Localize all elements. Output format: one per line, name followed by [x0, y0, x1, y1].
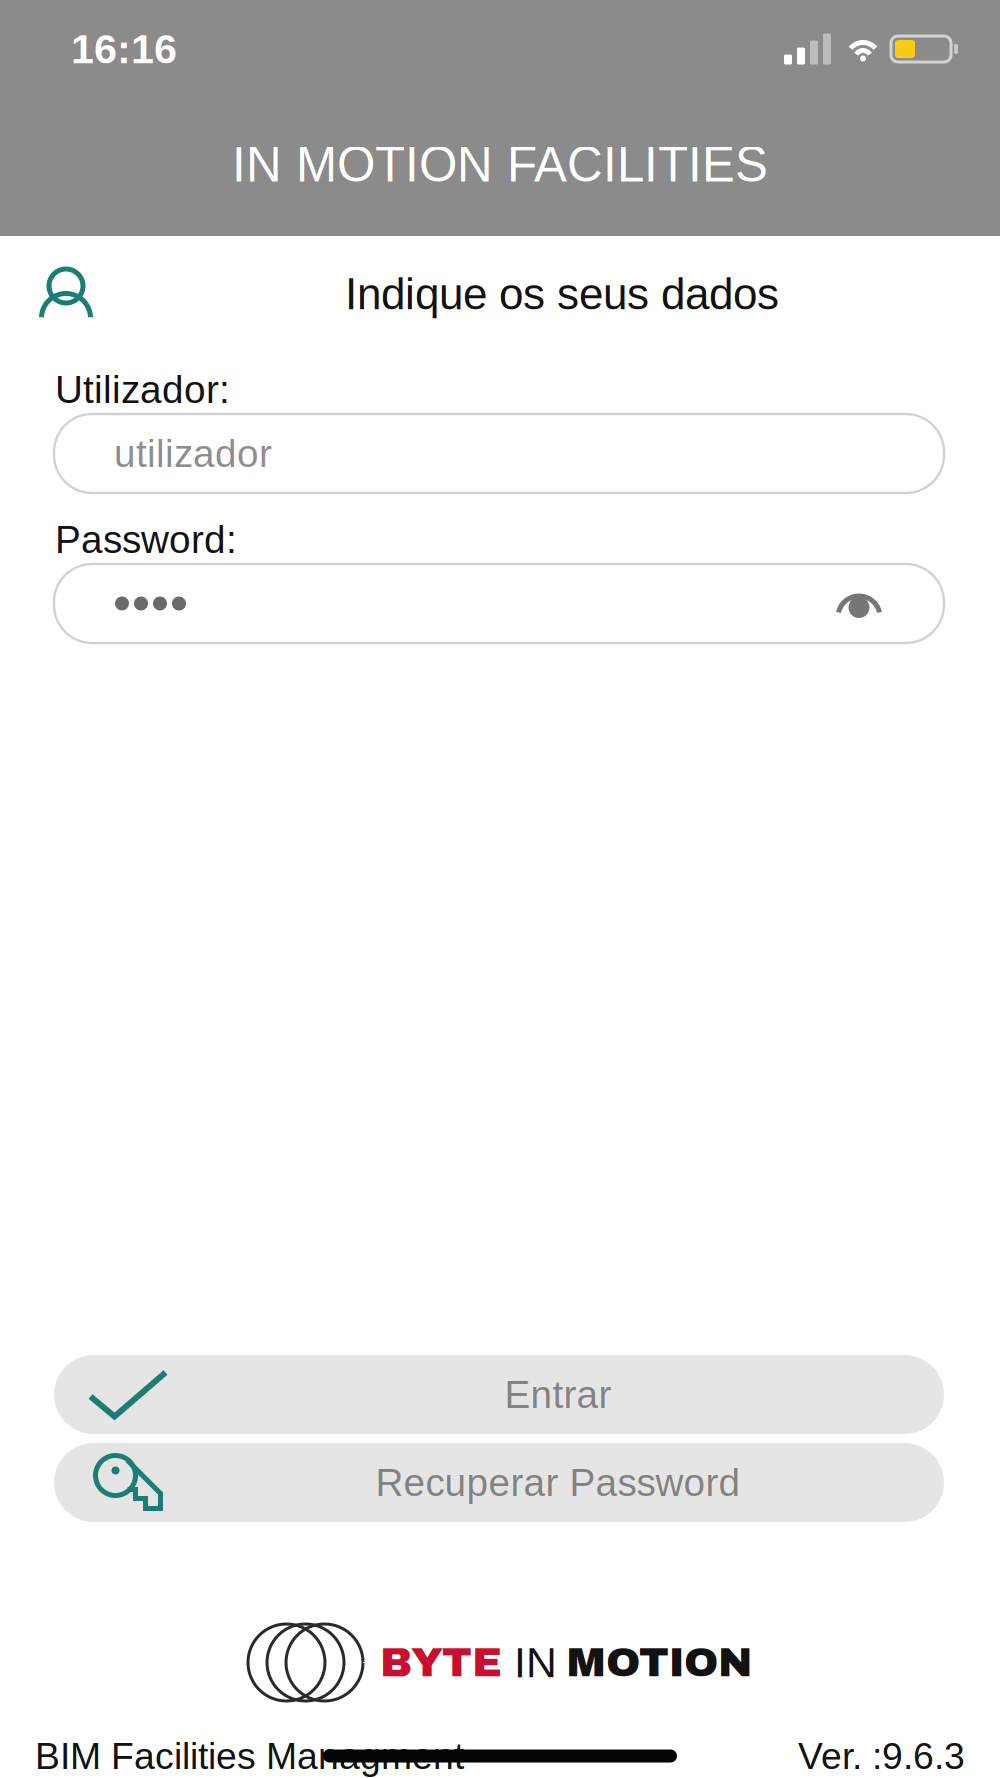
staticText: Recuperar Password [375, 1461, 740, 1504]
button[interactable]: Entrar [54, 1355, 944, 1434]
staticText: Password: [55, 518, 237, 561]
staticText: 16:16 [71, 26, 177, 72]
staticText: IN MOTION FACILITIES [232, 137, 768, 192]
staticText: BYTE [380, 1640, 502, 1685]
staticText: BIM Facilities Managment [35, 1735, 464, 1777]
staticText: IN [514, 1639, 557, 1686]
staticText: MOTION [566, 1640, 752, 1685]
staticText: Utilizador: [55, 368, 230, 411]
button[interactable]: Recuperar Password [54, 1443, 944, 1522]
staticText: utilizador [114, 432, 272, 475]
staticText: Indique os seus dados [345, 269, 779, 319]
staticText: Entrar [504, 1373, 611, 1416]
staticText: Ver. :9.6.3 [798, 1735, 965, 1777]
